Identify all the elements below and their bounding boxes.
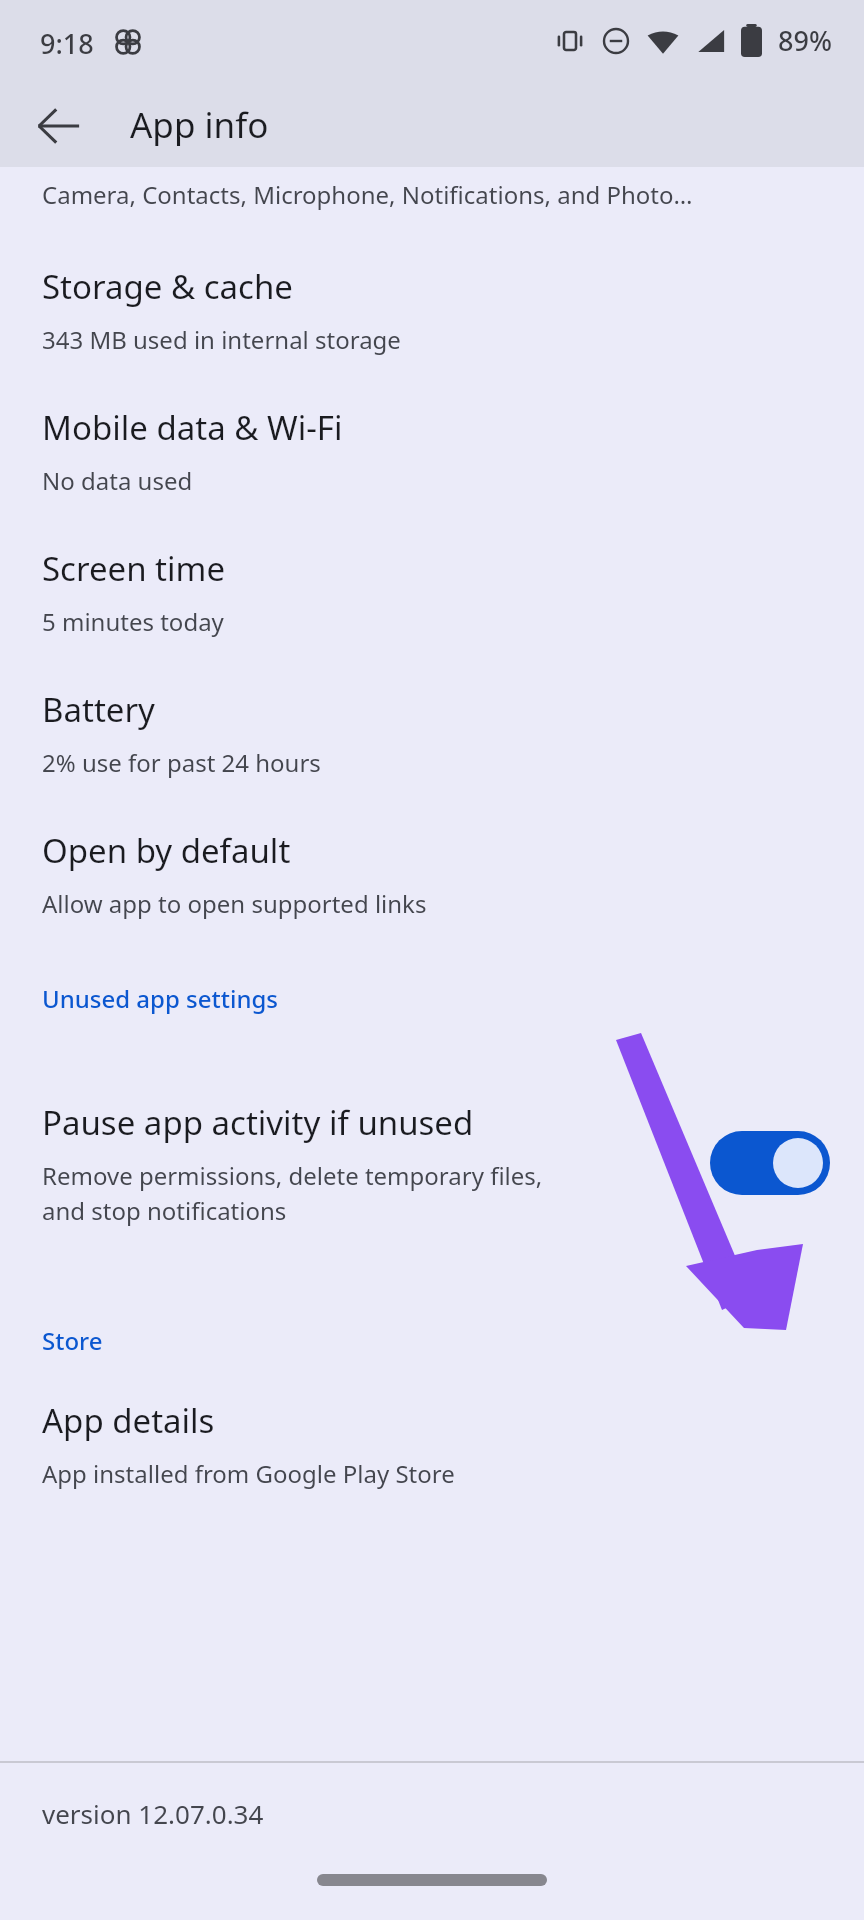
button[interactable]: Unused app settings <box>0 968 864 1038</box>
staticText: Allow app to open supported links <box>42 887 427 920</box>
staticText: Remove permissions, delete temporary fil… <box>42 1159 543 1227</box>
staticText: 5 minutes today <box>42 605 224 638</box>
staticText: App details <box>42 1398 215 1443</box>
button[interactable]: Store <box>0 1312 864 1382</box>
staticText: Unused app settings <box>42 982 278 1015</box>
staticText: 9:18 <box>40 25 94 62</box>
staticText: App installed from Google Play Store <box>42 1457 455 1490</box>
staticText: App info <box>130 101 269 149</box>
staticText: Screen time <box>42 546 226 591</box>
button[interactable]: Open by default <box>0 828 864 950</box>
button[interactable]: Back <box>20 88 96 164</box>
staticText: Camera, Contacts, Microphone, Notificati… <box>42 178 693 211</box>
staticText: Storage & cache <box>42 264 293 309</box>
button[interactable]: Pause app activity if unused <box>0 1048 864 1278</box>
staticText: Battery <box>42 687 155 732</box>
button[interactable]: Mobile data & Wi-Fi <box>0 405 864 527</box>
staticText: No data used <box>42 464 193 497</box>
staticText: Mobile data & Wi-Fi <box>42 405 343 450</box>
button[interactable]: Storage & cache <box>0 264 864 386</box>
button[interactable]: Battery <box>0 687 864 809</box>
staticText: Open by default <box>42 828 291 873</box>
button[interactable]: Pause app activity if unused toggle <box>710 1131 830 1195</box>
staticText: 343 MB used in internal storage <box>42 323 401 356</box>
staticText: Pause app activity if unused <box>42 1100 474 1145</box>
staticText: version 12.07.0.34 <box>42 1796 264 1831</box>
staticText: 89% <box>778 22 832 59</box>
button[interactable]: App details <box>0 1398 864 1520</box>
button[interactable]: Screen time <box>0 546 864 668</box>
staticText: 2% use for past 24 hours <box>42 746 321 779</box>
staticText: Store <box>42 1324 103 1357</box>
